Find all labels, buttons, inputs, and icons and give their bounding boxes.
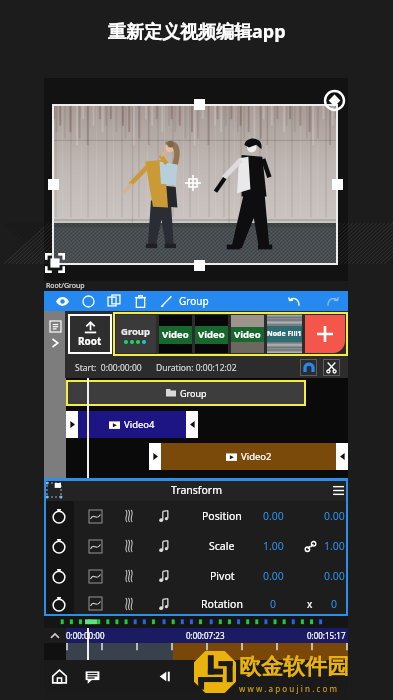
button[interactable] bbox=[186, 411, 198, 438]
staticText: Transform bbox=[171, 483, 222, 497]
button[interactable]: Add clip bbox=[305, 315, 345, 353]
button[interactable]: Position bbox=[44, 501, 348, 531]
staticText: Root/Group bbox=[46, 281, 85, 291]
button[interactable]: Group bbox=[66, 380, 306, 406]
staticText: 0:00:00:00 bbox=[66, 630, 105, 641]
staticText: Root bbox=[78, 334, 102, 348]
button[interactable]: Video2 bbox=[161, 443, 336, 470]
staticText: Pivot bbox=[210, 569, 235, 583]
button[interactable]: Magnet snap bbox=[300, 359, 317, 376]
button[interactable] bbox=[149, 443, 161, 470]
button[interactable]: Pivot bbox=[44, 561, 348, 591]
staticText: Position bbox=[202, 509, 242, 523]
button[interactable]: Redo bbox=[322, 291, 342, 311]
button[interactable]: Group bbox=[116, 315, 156, 353]
button[interactable]: Previous frame bbox=[150, 662, 178, 690]
button[interactable]: Node Fill1 bbox=[267, 315, 302, 353]
staticText: Node Fill1 bbox=[267, 329, 302, 339]
button[interactable]: Cut bbox=[323, 359, 340, 376]
staticText: 1.00 bbox=[324, 539, 345, 553]
staticText: 0.00 bbox=[263, 509, 284, 523]
staticText: Video bbox=[162, 328, 189, 341]
button[interactable]: Delete bbox=[130, 291, 150, 311]
staticText: Group bbox=[179, 294, 209, 308]
button[interactable]: Rotation bbox=[44, 591, 348, 616]
button[interactable]: Menu bbox=[328, 480, 348, 500]
staticText: 1.00 bbox=[263, 539, 284, 553]
button[interactable]: List bbox=[48, 319, 62, 333]
staticText: Group bbox=[180, 387, 207, 399]
button[interactable]: Edit bbox=[156, 291, 176, 311]
staticText: Start: 0:00:00:00 bbox=[75, 362, 142, 374]
button[interactable] bbox=[66, 411, 78, 438]
staticText: 0.00 bbox=[324, 509, 345, 523]
button[interactable]: Rotate bbox=[323, 89, 346, 112]
staticText: Video2 bbox=[241, 450, 272, 463]
button[interactable] bbox=[336, 443, 348, 470]
staticText: Scale bbox=[209, 539, 235, 553]
button[interactable]: Root bbox=[68, 314, 112, 354]
button[interactable]: Video4 bbox=[78, 411, 186, 438]
staticText: Duration: 0:00:12:02 bbox=[156, 362, 237, 374]
button[interactable]: Select bbox=[78, 291, 98, 311]
button[interactable]: Video bbox=[195, 315, 228, 353]
button[interactable]: Visibility bbox=[52, 291, 72, 311]
staticText: 欧金软件园 bbox=[239, 653, 349, 681]
staticText: Video bbox=[198, 328, 225, 341]
staticText: 0:00:15:17 bbox=[307, 630, 346, 641]
staticText: www.apoujin.com bbox=[239, 683, 340, 694]
button[interactable]: Comments bbox=[78, 662, 106, 690]
staticText: Rotation bbox=[201, 597, 243, 611]
staticText: 0 bbox=[270, 597, 277, 611]
staticText: Group bbox=[121, 325, 151, 338]
button[interactable]: Expand bbox=[48, 336, 62, 350]
staticText: 0 bbox=[331, 597, 338, 611]
button[interactable]: Home bbox=[45, 662, 73, 690]
button[interactable]: Undo bbox=[284, 291, 304, 311]
staticText: 0.00 bbox=[263, 569, 284, 583]
button[interactable]: Video bbox=[231, 315, 264, 353]
staticText: Video bbox=[234, 328, 261, 341]
button[interactable]: Collapse bbox=[44, 628, 66, 643]
staticText: 0.00 bbox=[324, 569, 345, 583]
staticText: Video4 bbox=[124, 418, 155, 431]
button[interactable]: Copy bbox=[104, 291, 124, 311]
staticText: 0:00:07:23 bbox=[186, 630, 225, 641]
staticText: x bbox=[307, 597, 313, 611]
button[interactable]: Video bbox=[159, 315, 192, 353]
button[interactable]: Scale bbox=[44, 531, 348, 561]
staticText: 重新定义视频编辑app bbox=[108, 19, 286, 44]
button[interactable]: Play bbox=[206, 662, 234, 690]
